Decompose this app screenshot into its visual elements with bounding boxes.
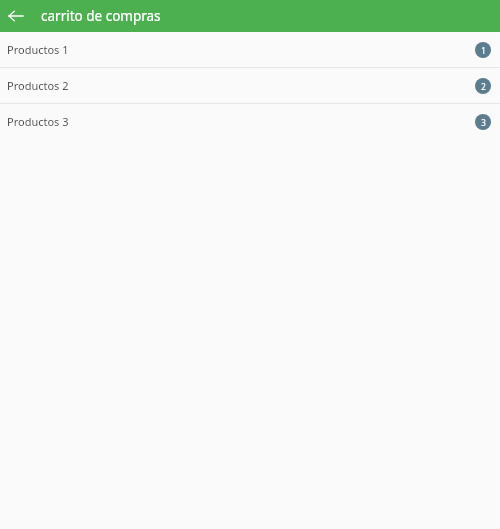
button[interactable]: Productos 1 — [0, 32, 500, 67]
button[interactable]: Productos 3 — [0, 104, 500, 139]
staticText: 1 — [481, 45, 486, 56]
button[interactable]: Back — [0, 0, 32, 32]
button[interactable]: Productos 2 — [0, 68, 500, 103]
staticText: Productos 2 — [7, 78, 69, 93]
staticText: 3 — [481, 117, 486, 128]
staticText: Productos 1 — [7, 42, 69, 57]
staticText: Productos 3 — [7, 114, 69, 129]
staticText: carrito de compras — [41, 7, 161, 25]
staticText: 2 — [481, 81, 486, 92]
